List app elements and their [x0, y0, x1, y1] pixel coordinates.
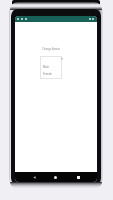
staticText: Male — [43, 65, 49, 69]
button[interactable]: Female — [40, 70, 62, 77]
button[interactable]: Back — [27, 172, 42, 182]
button[interactable]: Male — [40, 63, 62, 70]
staticText: Change Avatar — [15, 47, 92, 51]
staticText: Female — [43, 72, 52, 76]
button[interactable]: Open dropdown — [60, 57, 64, 61]
button[interactable]: Recent apps — [71, 172, 86, 182]
button[interactable]: Home — [48, 172, 63, 182]
